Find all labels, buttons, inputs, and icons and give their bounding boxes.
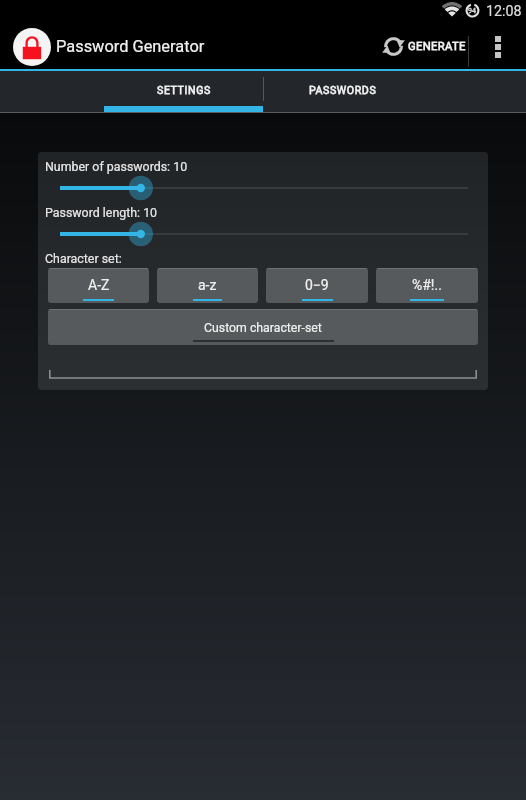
staticText: 12:08 (486, 3, 522, 20)
staticText: %#!.. (412, 277, 442, 293)
staticText: Number of passwords: 10 (45, 159, 188, 174)
button[interactable]: Custom character-set (48, 309, 478, 345)
button[interactable]: GENERATE (376, 22, 468, 71)
staticText: a-z (198, 277, 217, 293)
staticText: Password Generator (56, 37, 205, 56)
button[interactable]: 0−9 (266, 268, 368, 303)
button[interactable]: More options (481, 22, 515, 71)
staticText: SETTINGS (157, 84, 211, 96)
staticText: GENERATE (408, 40, 466, 53)
button[interactable]: PASSWORDS (263, 71, 422, 113)
staticText: Password length: 10 (45, 205, 158, 220)
staticText: 94 (468, 6, 477, 14)
staticText: A-Z (88, 277, 110, 293)
staticText: Custom character-set (204, 321, 322, 335)
staticText: PASSWORDS (309, 84, 377, 96)
button[interactable]: A-Z (48, 268, 149, 303)
button[interactable]: SETTINGS (104, 71, 263, 113)
button[interactable]: a-z (157, 268, 258, 303)
button[interactable]: %#!.. (376, 268, 478, 303)
staticText: 0−9 (305, 277, 329, 293)
staticText: Character set: (45, 251, 122, 266)
